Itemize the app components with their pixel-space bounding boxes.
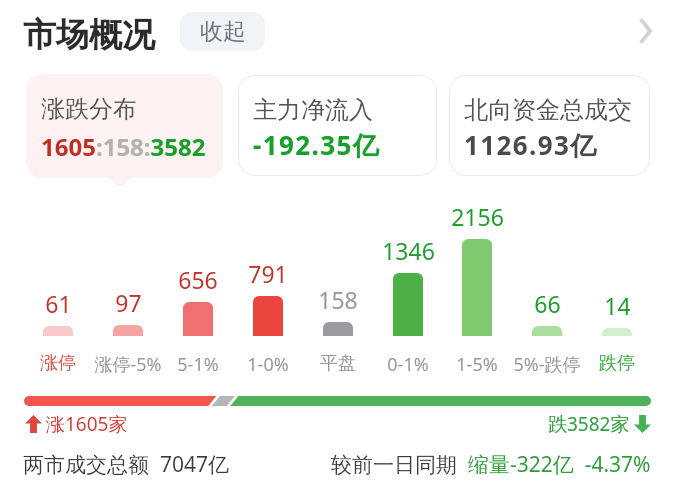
- staticText: 涨跌分布: [41, 94, 137, 124]
- button[interactable]: 涨跌分布: [26, 74, 223, 178]
- button[interactable]: 收起: [180, 12, 265, 51]
- staticText: 656: [178, 264, 218, 295]
- staticText: 66: [534, 288, 561, 319]
- button[interactable]: 主力净流入: [238, 75, 437, 176]
- staticText: 1346: [382, 235, 435, 266]
- staticText: 5-1%: [177, 352, 219, 377]
- staticText: 跌停: [599, 352, 635, 375]
- staticText: 北向资金总成交: [464, 95, 632, 125]
- staticText: 61: [45, 288, 72, 319]
- staticText: 14: [604, 290, 631, 321]
- staticText: -192.35亿: [253, 127, 381, 163]
- staticText: 1-0%: [247, 352, 289, 377]
- staticText: 1126.93亿: [464, 127, 598, 163]
- staticText: 97: [115, 287, 142, 318]
- staticText: 市场概况: [23, 14, 155, 56]
- staticText: 2156: [451, 201, 504, 232]
- staticText: 791: [248, 258, 288, 289]
- button[interactable]: 北向资金总成交: [449, 75, 650, 176]
- staticText: 跌3582家: [548, 411, 630, 437]
- staticText: 涨1605家: [46, 411, 128, 437]
- staticText: 涨停-5%: [94, 352, 162, 377]
- staticText: 主力净流入: [253, 95, 373, 125]
- staticText: 两市成交总额 7047亿: [23, 450, 229, 479]
- button[interactable]: 查看详情: [626, 11, 666, 51]
- staticText: 较前一日同期 缩量-322亿 -4.37%: [331, 450, 651, 479]
- staticText: 1-5%: [456, 352, 498, 377]
- staticText: 1605:158:3582: [41, 130, 206, 163]
- staticText: 平盘: [320, 352, 356, 375]
- staticText: 0-1%: [387, 352, 429, 377]
- staticText: 涨停: [40, 352, 76, 375]
- staticText: 158: [318, 284, 358, 315]
- staticText: 收起: [200, 17, 246, 46]
- staticText: 5%-跌停: [513, 352, 581, 377]
